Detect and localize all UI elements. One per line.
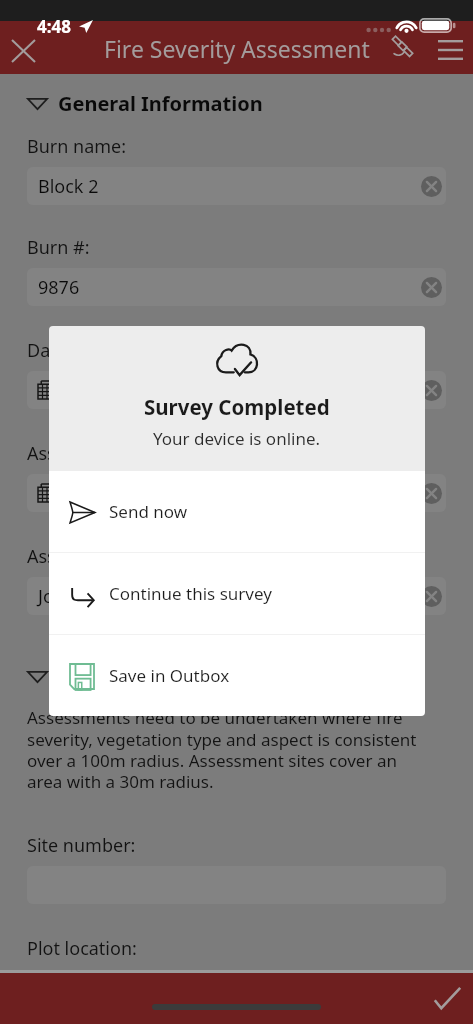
button[interactable]: Block 2	[27, 167, 446, 205]
staticText: Site number:	[27, 833, 136, 858]
button[interactable]: Continue this survey	[49, 553, 425, 634]
staticText: Save in Outbox	[109, 664, 230, 687]
staticText: Plot location:	[27, 936, 137, 961]
staticText: Block 2	[38, 174, 420, 199]
staticText: Send now	[109, 500, 188, 523]
staticText: Burn name:	[27, 134, 127, 159]
staticText: Date:	[27, 338, 72, 363]
staticText: 300m radius area and data collected alon…	[27, 969, 418, 992]
staticText: Continue this survey	[109, 582, 272, 605]
button[interactable]: Clear	[27, 371, 446, 409]
button[interactable]: Clear	[420, 585, 442, 607]
button[interactable]: General Information	[27, 90, 446, 117]
staticText: 4:48	[37, 15, 71, 38]
staticText: 9876	[38, 275, 420, 300]
staticText: Survey Completed	[144, 393, 330, 421]
staticText: General Information	[58, 90, 263, 117]
button[interactable]: Menu	[428, 30, 472, 70]
button[interactable]: GPS status	[389, 33, 414, 58]
button[interactable]: Clear	[420, 482, 442, 504]
staticText: Burn #:	[27, 235, 90, 260]
button[interactable]: Clear	[420, 276, 442, 298]
button[interactable]: Save in Outbox	[49, 635, 425, 716]
staticText: Your device is online.	[153, 427, 321, 450]
button[interactable]: John Smith	[27, 577, 446, 615]
staticText: Assessor:	[27, 544, 107, 569]
staticText: Fire Severity Assessment	[104, 33, 370, 64]
button[interactable]: Clear	[27, 474, 446, 512]
button[interactable]: Clear	[420, 379, 442, 401]
button[interactable]: Clear	[420, 175, 442, 197]
button[interactable]: 9876	[27, 268, 446, 306]
staticText: Assessment date:	[27, 441, 176, 466]
staticText	[65, 481, 420, 506]
staticText: John Smith	[38, 584, 420, 609]
staticText: Assessment sites	[58, 663, 229, 690]
button[interactable]: Assessment sites	[27, 663, 446, 690]
button[interactable]: Close	[2, 29, 45, 72]
staticText	[65, 378, 420, 403]
button[interactable]: Save	[424, 978, 470, 1018]
staticText: Assessments need to be undertaken where …	[27, 706, 427, 793]
button[interactable]: Send now	[49, 471, 425, 552]
